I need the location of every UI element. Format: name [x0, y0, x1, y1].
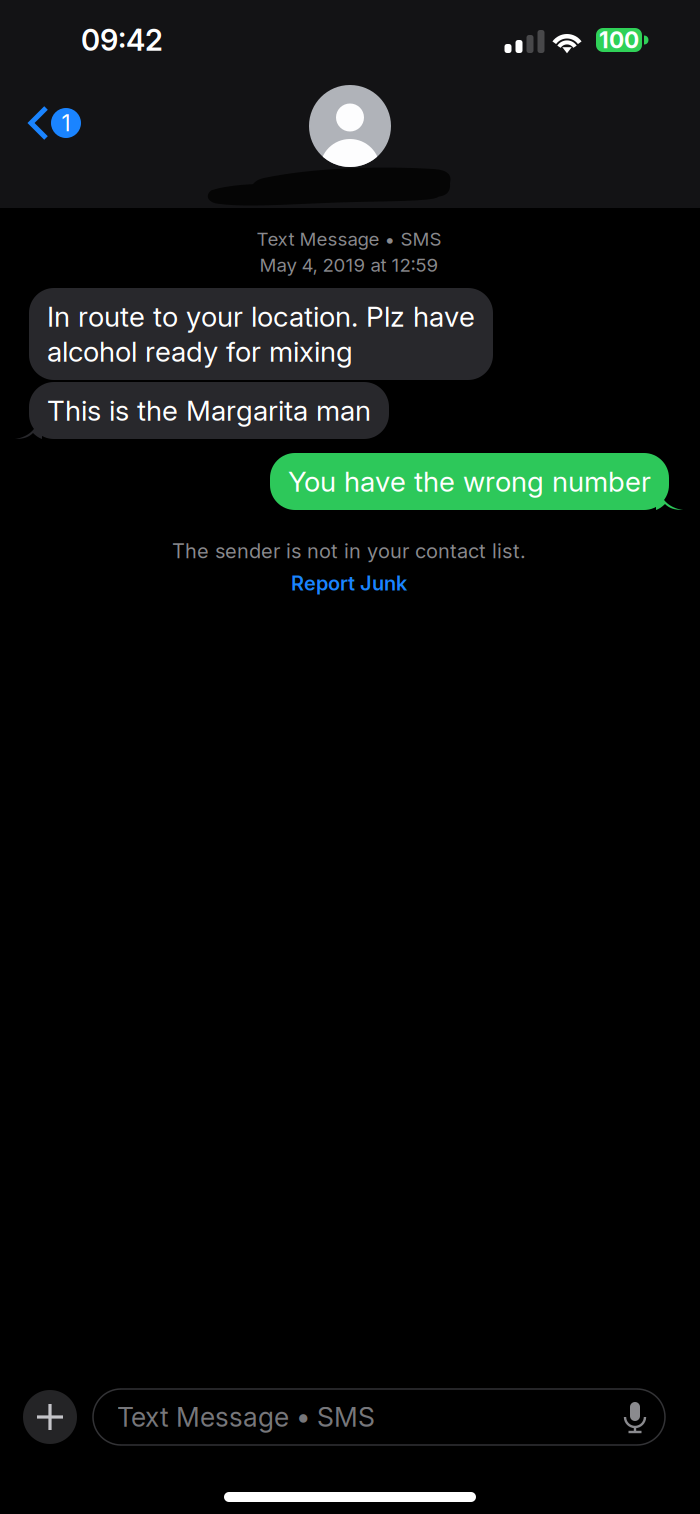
staticText: 1 — [61, 109, 70, 137]
staticText: May 4, 2019 at 12:59 — [259, 254, 438, 276]
staticText: Text Message • SMS — [117, 1401, 375, 1433]
staticText: Text Message • SMS — [256, 228, 441, 250]
button[interactable]: Back to Messages, 1 unread — [0, 91, 101, 155]
staticText: The sender is not in your contact list. — [172, 539, 526, 563]
staticText: 100 — [599, 26, 639, 54]
staticText: alcohol ready for mixing — [47, 335, 353, 368]
staticText: You have the wrong number — [288, 465, 651, 498]
button[interactable]: Add attachment — [23, 1390, 77, 1444]
staticText: Report Junk — [291, 571, 407, 595]
button[interactable]: Report Junk — [279, 567, 419, 599]
staticText: This is the Margarita man — [47, 394, 371, 427]
staticText: 09:42 — [81, 22, 163, 58]
button[interactable]: Text Message, SMS — [93, 1389, 665, 1445]
staticText: In route to your location. Plz have — [47, 300, 475, 333]
